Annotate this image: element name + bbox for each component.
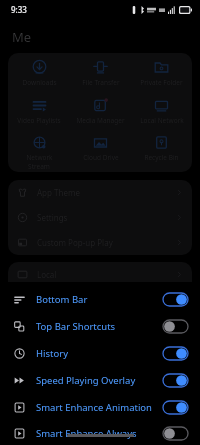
button[interactable]: Bottom Bar xyxy=(0,286,200,313)
button[interactable]: Local xyxy=(8,262,192,286)
staticText: File Transfer xyxy=(82,78,120,87)
staticText: Media Manager xyxy=(76,116,125,125)
button[interactable]: Recycle Bin xyxy=(131,135,192,172)
button[interactable]: Media Manager xyxy=(70,98,131,135)
button[interactable]: Smart Enhance Always xyxy=(0,421,200,445)
staticText: Video Playlists xyxy=(17,116,61,125)
button[interactable]: Video Playlists xyxy=(8,98,70,135)
button[interactable]: Private Folder xyxy=(131,60,192,98)
button[interactable]: History xyxy=(0,340,200,367)
button[interactable]: Speed Playing Overlay xyxy=(0,367,200,394)
staticText: Bottom Bar xyxy=(36,293,88,306)
staticText: Speed Playing Overlay xyxy=(36,374,136,387)
button[interactable]: Downloads xyxy=(8,60,70,98)
button[interactable]: Top Bar Shortcuts xyxy=(0,313,200,340)
staticText: Smart Enhance Always xyxy=(36,427,137,440)
staticText: Downloads xyxy=(22,78,57,87)
button[interactable]: File Transfer xyxy=(70,60,131,98)
button[interactable]: Cloud Drive xyxy=(70,135,131,172)
staticText: Smart Enhance Animation xyxy=(36,401,152,414)
staticText: App Theme xyxy=(37,187,80,198)
staticText: Me xyxy=(12,28,32,46)
staticText: Local xyxy=(37,269,57,280)
staticText: Recycle Bin xyxy=(144,153,179,162)
staticText: Network xyxy=(26,153,53,162)
staticText: Custom Pop-up Play xyxy=(37,237,113,248)
staticText: Cloud Drive xyxy=(83,153,119,162)
staticText: Top Bar Shortcuts xyxy=(36,320,116,333)
button[interactable]: Network xyxy=(8,135,70,172)
button[interactable]: Smart Enhance Animation xyxy=(0,394,200,421)
staticText: 9:33 xyxy=(11,4,27,15)
staticText: Stream xyxy=(28,162,50,171)
staticText: History xyxy=(36,347,68,360)
staticText: Local Network xyxy=(140,116,184,125)
staticText: Private Folder xyxy=(140,78,183,87)
staticText: Settings xyxy=(37,212,68,223)
button[interactable]: Local Network xyxy=(131,98,192,135)
